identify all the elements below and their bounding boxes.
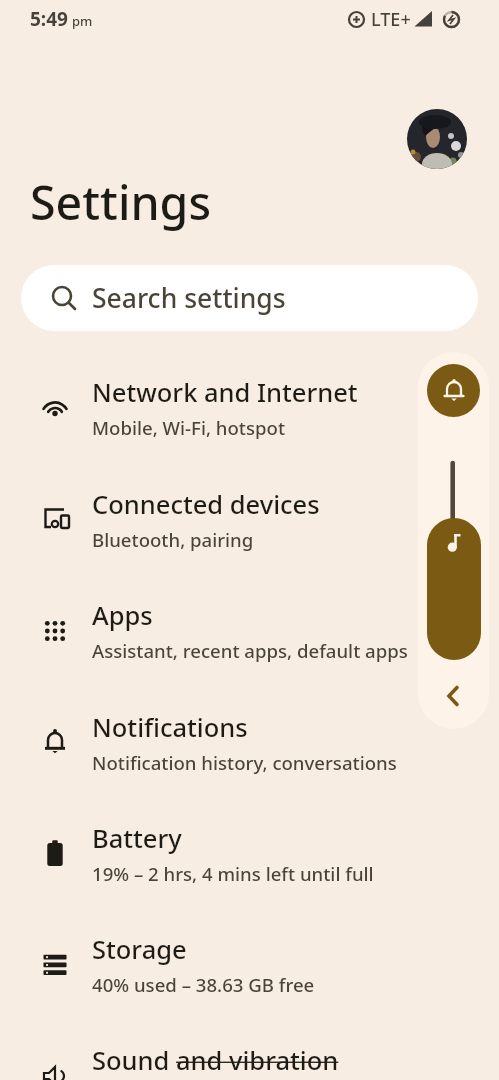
button[interactable]: Sound and vibration xyxy=(0,1020,499,1080)
button[interactable]: Search settings xyxy=(21,265,478,331)
button[interactable] xyxy=(407,109,467,169)
button[interactable] xyxy=(427,364,480,417)
staticText: Bluetooth, pairing xyxy=(92,527,254,552)
staticText: Battery xyxy=(92,821,182,856)
button[interactable]: Notifications xyxy=(0,687,499,798)
staticText: Notification history, conversations xyxy=(92,750,397,775)
staticText: Connected devices xyxy=(92,487,320,522)
staticText: Settings xyxy=(30,170,212,233)
staticText: Search settings xyxy=(92,280,286,316)
staticText: Storage xyxy=(92,932,187,967)
button[interactable]: Battery xyxy=(0,798,499,909)
button[interactable] xyxy=(436,678,471,713)
button[interactable]: Connected devices xyxy=(0,464,499,575)
staticText: Apps xyxy=(92,598,153,633)
staticText: Network and Internet xyxy=(92,375,358,410)
staticText: pm xyxy=(72,12,93,30)
staticText: Sound and vibration xyxy=(92,1043,339,1078)
staticText: 5:49 xyxy=(30,6,68,32)
button[interactable]: Network and Internet xyxy=(0,352,499,463)
button[interactable] xyxy=(427,518,481,660)
staticText: Notifications xyxy=(92,710,248,745)
button[interactable]: Apps xyxy=(0,575,499,686)
staticText: LTE+ xyxy=(371,7,411,32)
button[interactable]: Storage xyxy=(0,909,499,1020)
staticText: Assistant, recent apps, default apps xyxy=(92,638,408,663)
staticText: 19% – 2 hrs, 4 mins left until full xyxy=(92,861,374,886)
staticText: 40% used – 38.63 GB free xyxy=(92,972,315,997)
staticText: Mobile, Wi-Fi, hotspot xyxy=(92,415,286,440)
